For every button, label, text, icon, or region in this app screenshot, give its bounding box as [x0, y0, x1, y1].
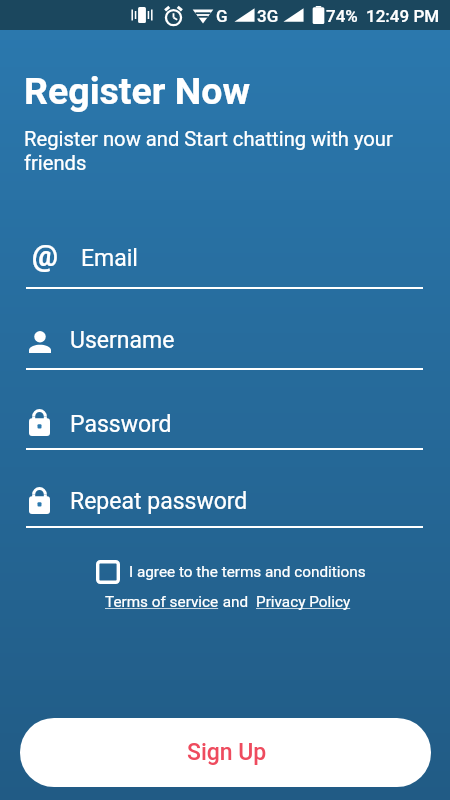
- staticText: G: [216, 6, 228, 26]
- staticText: Repeat password: [70, 488, 248, 515]
- button[interactable]: I agree to the terms and conditions: [96, 556, 366, 587]
- staticText: Username: [70, 327, 175, 354]
- button[interactable]: Terms of service: [105, 593, 219, 611]
- staticText: and: [219, 593, 256, 611]
- staticText: 3G: [257, 6, 279, 26]
- staticText: I agree to the terms and conditions: [129, 563, 366, 581]
- button[interactable]: Sign Up: [20, 718, 431, 787]
- staticText: Password: [70, 411, 172, 438]
- staticText: Register Now: [24, 69, 251, 113]
- staticText: Register now and Start chatting with you…: [24, 127, 393, 175]
- staticText: 12:49 PM: [366, 6, 440, 26]
- staticText: Email: [81, 245, 138, 272]
- staticText: 74%: [326, 6, 358, 26]
- button[interactable]: Privacy Policy: [256, 593, 351, 611]
- staticText: Sign Up: [187, 739, 267, 766]
- staticText: @: [32, 239, 58, 273]
